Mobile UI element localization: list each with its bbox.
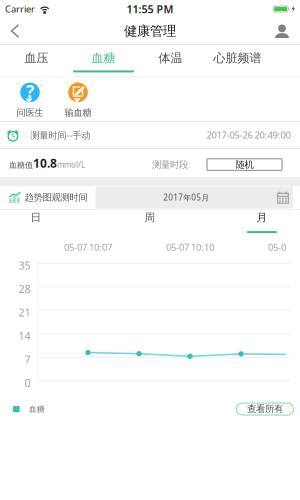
staticText: 周	[144, 211, 155, 224]
staticText: 05-07 10:07	[64, 241, 112, 253]
staticText: ?	[26, 80, 34, 103]
staticText: 21	[18, 305, 30, 319]
staticText: 趋势图观测时间	[24, 192, 87, 203]
staticText: 血压	[24, 51, 48, 65]
staticText: 11:55 PM	[126, 2, 173, 16]
staticText: 日	[30, 211, 41, 224]
button[interactable]: 2017年05月	[95, 186, 293, 208]
staticText: 血糖	[29, 404, 45, 414]
button[interactable]: 周	[122, 210, 178, 237]
staticText: mmol/L	[57, 159, 85, 170]
staticText: 测量时间--手动	[30, 129, 90, 141]
button[interactable]: 日	[8, 210, 64, 237]
button[interactable]: 随机	[207, 159, 282, 170]
staticText: 查看所有	[247, 403, 283, 415]
staticText: 测量时段	[152, 159, 188, 170]
staticText: 28	[18, 282, 30, 296]
staticText: 10.8	[33, 155, 57, 171]
button[interactable]: 血压	[3, 46, 70, 75]
button[interactable]: 体温	[137, 46, 204, 75]
button[interactable]: 心脏频谱	[204, 46, 271, 75]
staticText: 心脏频谱	[213, 51, 261, 65]
button[interactable]: 输血糖	[54, 82, 102, 118]
staticText: 14	[18, 329, 30, 343]
staticText: Carrier	[5, 3, 35, 15]
button[interactable]: 血糖	[70, 46, 137, 75]
staticText: 体温	[158, 51, 182, 65]
staticText: 2017年05月	[163, 192, 209, 203]
staticText: 月	[256, 211, 267, 224]
staticText: 问医生	[16, 107, 43, 118]
staticText: 35	[18, 258, 30, 272]
staticText: 05-0	[268, 241, 286, 253]
button[interactable]: Back	[0, 21, 31, 41]
staticText: 血糖	[91, 51, 115, 65]
staticText: 健康管理	[124, 23, 176, 39]
staticText: 05-07 10:10	[166, 241, 214, 253]
button[interactable]: 查看所有	[236, 403, 293, 415]
button[interactable]: 月	[234, 210, 290, 237]
button[interactable]: Profile	[262, 21, 300, 41]
staticText: 输血糖	[64, 107, 91, 118]
staticText: 随机	[235, 159, 253, 170]
staticText: 7	[24, 352, 30, 366]
staticText: 2017-05-26 20:49:00	[206, 129, 290, 141]
staticText: 0	[24, 376, 30, 390]
button[interactable]: ?	[6, 82, 54, 118]
staticText: 血糖值	[9, 160, 33, 170]
